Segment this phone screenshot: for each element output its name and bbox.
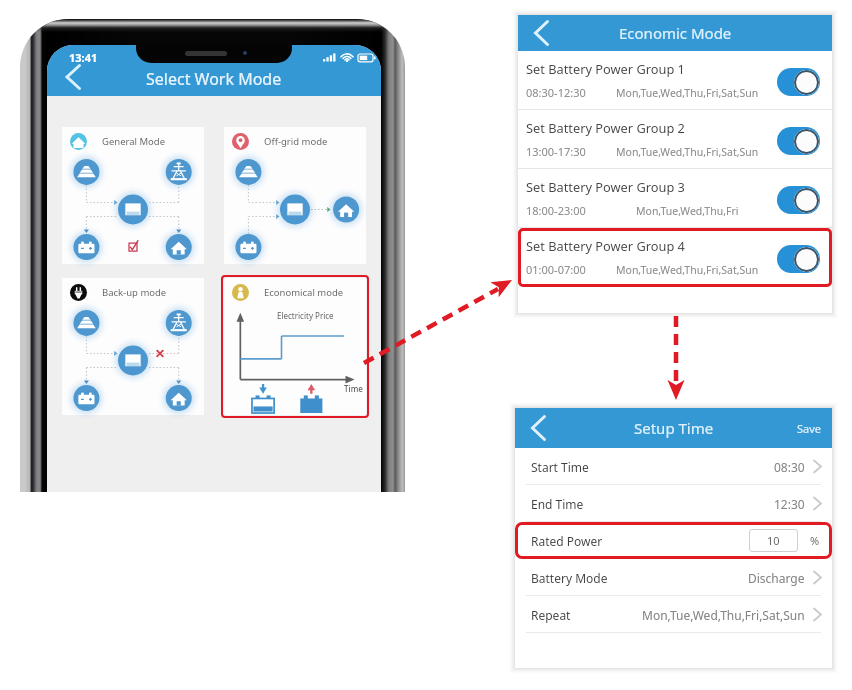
staticText: Mon,Tue,Wed,Thu,Fri,Sat,Sun xyxy=(642,607,805,623)
staticText: 13:41 xyxy=(69,50,98,65)
staticText: General Mode xyxy=(102,135,166,148)
button[interactable]: Set Battery Power Group 3 xyxy=(518,169,832,228)
staticText: Set Battery Power Group 3 xyxy=(526,178,685,195)
staticText: End Time xyxy=(531,496,584,512)
button[interactable]: End Time xyxy=(515,485,832,522)
button[interactable]: Economical mode xyxy=(221,275,369,418)
button[interactable]: Repeat xyxy=(515,596,832,633)
staticText: Battery Mode xyxy=(531,570,608,586)
button[interactable]: General Mode xyxy=(59,124,207,267)
staticText: Set Battery Power Group 4 xyxy=(526,237,685,254)
button[interactable]: Save xyxy=(787,413,832,444)
staticText: Off-grid mode xyxy=(264,135,328,148)
button[interactable]: Set Battery Power Group 4 xyxy=(518,228,832,287)
button[interactable]: Off-grid mode xyxy=(221,124,369,267)
staticText: Repeat xyxy=(531,607,571,623)
button[interactable]: Battery Mode xyxy=(515,559,832,596)
staticText: Mon,Tue,Wed,Thu,Fri,Sat,Sun xyxy=(616,263,759,277)
button[interactable]: Toggle group 4 xyxy=(777,245,820,273)
staticText: Back-up mode xyxy=(102,286,167,299)
staticText: Time xyxy=(344,383,363,394)
button[interactable]: Back xyxy=(526,18,556,48)
staticText: Economical mode xyxy=(264,286,344,299)
staticText: Mon,Tue,Wed,Thu,Fri,Sat,Sun xyxy=(616,86,759,100)
button[interactable]: Toggle group 3 xyxy=(777,186,820,214)
staticText: Discharge xyxy=(748,570,805,586)
staticText: % xyxy=(810,533,820,548)
staticText: Set Battery Power Group 1 xyxy=(526,60,685,77)
staticText: Save xyxy=(797,421,822,436)
staticText: Rated Power xyxy=(531,533,603,549)
button[interactable]: Toggle group 2 xyxy=(777,127,820,155)
button[interactable]: Rated Power xyxy=(515,522,832,559)
staticText: Mon,Tue,Wed,Thu,Fri xyxy=(636,204,739,218)
staticText: Setup Time xyxy=(634,418,714,438)
button[interactable]: Back xyxy=(523,413,553,443)
staticText: 10 xyxy=(767,533,780,548)
staticText: Select Work Mode xyxy=(146,68,282,90)
staticText: Start Time xyxy=(531,459,589,475)
staticText: Economic Mode xyxy=(619,23,732,43)
staticText: Mon,Tue,Wed,Thu,Fri,Sat,Sun xyxy=(616,145,759,159)
button[interactable]: Set Battery Power Group 2 xyxy=(518,110,832,169)
staticText: 08:30-12:30 xyxy=(526,85,586,100)
staticText: 08:30 xyxy=(774,459,805,475)
staticText: 13:00-17:30 xyxy=(526,144,586,159)
staticText: Electricity Price xyxy=(277,310,334,321)
button[interactable]: Start Time xyxy=(515,448,832,485)
button[interactable]: Toggle group 1 xyxy=(777,68,820,96)
staticText: 12:30 xyxy=(774,496,805,512)
staticText: 18:00-23:00 xyxy=(526,203,586,218)
button[interactable]: Set Battery Power Group 1 xyxy=(518,51,832,110)
button[interactable]: Back-up mode xyxy=(59,275,207,418)
staticText: Set Battery Power Group 2 xyxy=(526,119,685,136)
button[interactable]: Back xyxy=(55,59,91,95)
staticText: 01:00-07:00 xyxy=(526,262,586,277)
